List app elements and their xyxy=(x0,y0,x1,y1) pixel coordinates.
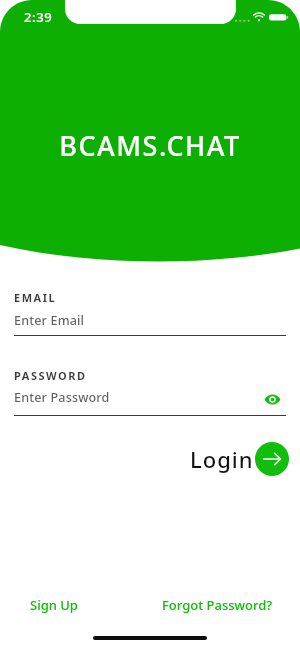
button[interactable]: Sign Up xyxy=(14,590,94,620)
staticText: Enter Password xyxy=(14,389,110,406)
staticText: Sign Up xyxy=(30,596,78,614)
staticText: EMAIL xyxy=(14,290,57,305)
staticText: PASSWORD xyxy=(14,368,87,383)
staticText: BCAMS.CHAT xyxy=(59,127,241,164)
staticText: 2:39 xyxy=(24,8,53,26)
staticText: Enter Email xyxy=(14,312,85,329)
button[interactable]: Forgot Password? xyxy=(160,590,275,620)
button[interactable]: Login xyxy=(190,442,289,476)
staticText: Login xyxy=(190,444,254,474)
button[interactable]: Show password xyxy=(261,388,283,410)
staticText: Forgot Password? xyxy=(162,596,273,614)
